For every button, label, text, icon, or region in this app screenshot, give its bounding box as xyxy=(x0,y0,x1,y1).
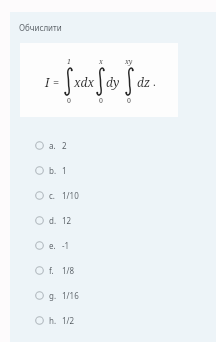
staticText: 0 xyxy=(67,96,71,106)
staticText: 0 xyxy=(99,96,103,106)
staticText: dy xyxy=(106,74,120,90)
staticText: 1 xyxy=(62,165,67,176)
button[interactable]: g. xyxy=(10,283,216,308)
staticText: g. xyxy=(49,290,57,301)
staticText: 2 xyxy=(62,140,67,151)
staticText: 1/16 xyxy=(62,290,79,301)
staticText: 1/8 xyxy=(62,265,75,276)
staticText: a. xyxy=(49,140,56,151)
staticText: c. xyxy=(49,190,55,201)
button[interactable]: d. xyxy=(10,208,216,233)
staticText: b. xyxy=(49,165,57,176)
staticText: . xyxy=(153,74,156,89)
button[interactable]: a. xyxy=(10,133,216,158)
staticText: 0 xyxy=(127,96,131,106)
button[interactable]: h. xyxy=(10,308,216,333)
staticText: -1 xyxy=(62,240,70,251)
button[interactable]: e. xyxy=(10,233,216,258)
staticText: f. xyxy=(49,265,54,276)
button[interactable]: f. xyxy=(10,258,216,283)
staticText: 12 xyxy=(62,215,72,226)
staticText: xdx xyxy=(74,74,95,90)
staticText: I xyxy=(45,74,50,90)
staticText: 1 xyxy=(67,57,71,67)
button[interactable]: c. xyxy=(10,183,216,208)
staticText: xy xyxy=(125,57,133,67)
button[interactable]: b. xyxy=(10,158,216,183)
staticText: dz xyxy=(137,74,151,90)
staticText: 1/2 xyxy=(62,315,75,326)
staticText: d. xyxy=(49,215,57,226)
staticText: Обчислити xyxy=(19,22,62,33)
staticText: h. xyxy=(49,315,57,326)
staticText: = xyxy=(53,74,60,89)
staticText: e. xyxy=(49,240,56,251)
staticText: 1/10 xyxy=(62,190,79,201)
staticText: x xyxy=(99,57,103,67)
